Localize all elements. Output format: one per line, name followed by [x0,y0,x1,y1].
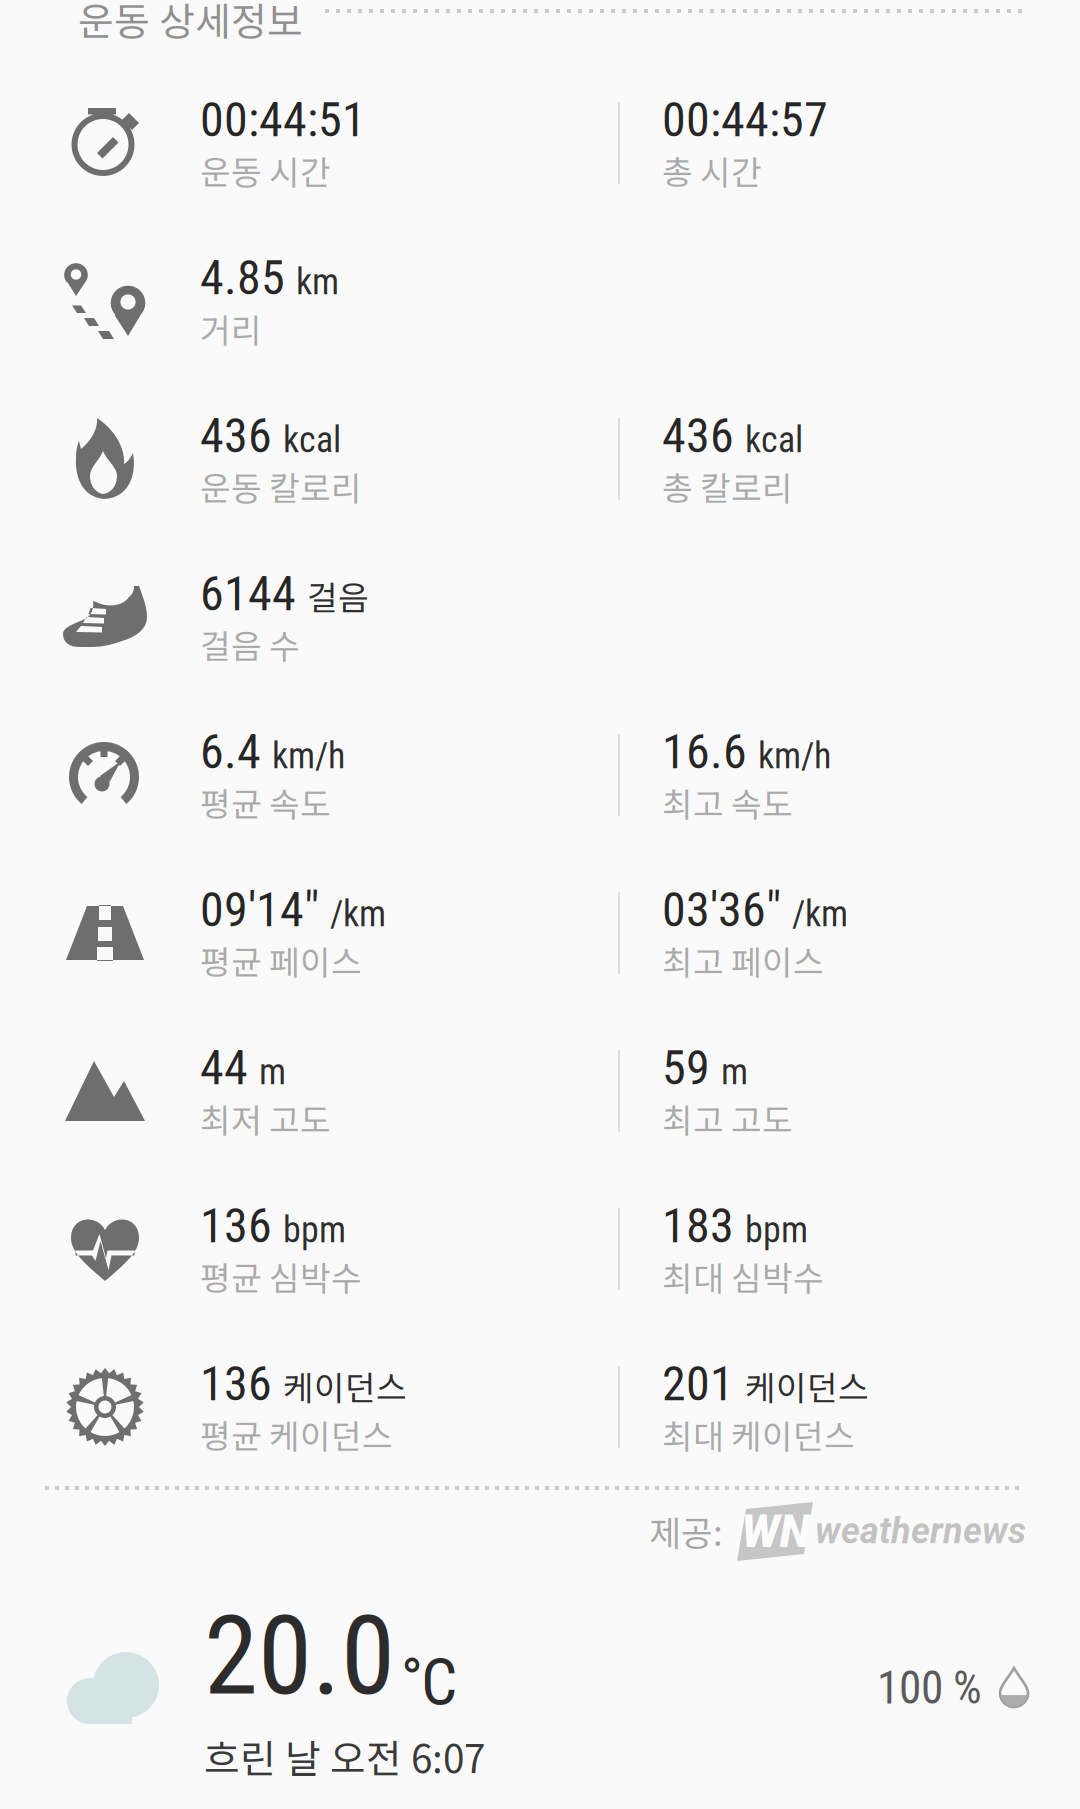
staticText: 00:44:57 [662,92,828,148]
staticText: 최대 심박수 [662,1252,824,1300]
staticText: 최고 페이스 [662,936,824,984]
staticText: 16.6 [662,724,747,780]
staticText: WN [741,1505,810,1558]
staticText: kcal [745,419,803,461]
staticText: 거리 [200,304,262,352]
staticText: 59 [662,1040,710,1096]
staticText: /km [792,893,848,935]
staticText: ° [401,1646,423,1715]
staticText: km/h [758,735,831,777]
staticText: 183 [662,1198,734,1254]
staticText: 09'14" [200,882,319,938]
staticText: bpm [283,1209,346,1251]
staticText: 136 [200,1356,272,1412]
staticText: 최저 고도 [200,1094,331,1142]
staticText: 44 [200,1040,248,1096]
staticText: 걸음 [307,572,369,620]
staticText: 운동 상세정보 [78,0,303,47]
staticText: 운동 시간 [200,146,331,194]
staticText: 케이던스 [283,1362,407,1410]
staticText: 운동 칼로리 [200,462,362,510]
staticText: 제공: [649,1506,723,1556]
staticText: 흐린 날 오전 6:07 [204,1728,485,1784]
staticText: 평균 케이던스 [200,1410,393,1458]
staticText: 최고 속도 [662,778,793,826]
staticText: /km [330,893,386,935]
staticText: 걸음 수 [200,620,300,668]
staticText: C [421,1645,457,1720]
staticText: bpm [745,1209,808,1251]
staticText: 최대 케이던스 [662,1410,855,1458]
staticText: kcal [283,419,341,461]
staticText: m [259,1051,286,1093]
staticText: 00:44:51 [200,92,366,148]
staticText: 평균 페이스 [200,936,362,984]
staticText: 케이던스 [745,1362,869,1410]
staticText: 평균 심박수 [200,1252,362,1300]
staticText: 20.0 [204,1592,395,1720]
staticText: 총 칼로리 [662,462,793,510]
staticText: 평균 속도 [200,778,331,826]
staticText: weathernews [815,1510,1026,1552]
staticText: 6.4 [200,724,261,780]
staticText: km [296,261,339,303]
staticText: 총 시간 [662,146,762,194]
staticText: 136 [200,1198,272,1254]
staticText: 최고 고도 [662,1094,793,1142]
staticText: 201 [662,1356,734,1412]
staticText: 100 % [877,1661,982,1715]
staticText: 6144 [200,566,296,622]
staticText: km/h [272,735,345,777]
staticText: m [721,1051,748,1093]
staticText: 436 [200,408,272,464]
staticText: 436 [662,408,734,464]
staticText: 03'36" [662,882,781,938]
staticText: 4.85 [200,250,285,306]
